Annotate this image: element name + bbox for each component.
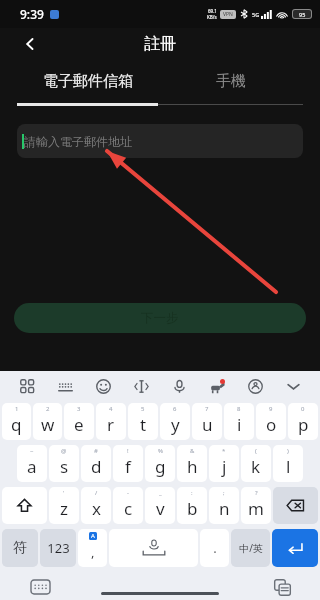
staticText: 5 — [141, 405, 145, 413]
button[interactable]: Profile — [242, 373, 268, 399]
staticText: 0 — [301, 405, 305, 413]
staticText: m — [248, 497, 264, 520]
staticText: l — [286, 455, 291, 478]
button[interactable]: ; — [209, 487, 239, 524]
staticText: e — [74, 413, 84, 436]
staticText: 123 — [47, 539, 70, 557]
staticText: a — [27, 455, 37, 478]
button[interactable]: Space — [109, 529, 198, 567]
staticText: r — [107, 413, 115, 436]
button[interactable]: Collapse keyboard — [280, 373, 306, 399]
staticText: k — [251, 455, 261, 478]
staticText: ) — [287, 447, 289, 455]
staticText: _ — [159, 489, 162, 497]
staticText: h — [187, 455, 198, 478]
button[interactable]: ' — [49, 487, 79, 524]
button[interactable]: 7 — [192, 403, 222, 440]
staticText: g — [155, 455, 166, 478]
staticText: - — [127, 489, 129, 497]
button[interactable]: 9 — [256, 403, 286, 440]
staticText: ? — [255, 489, 258, 497]
button[interactable]: : — [177, 487, 207, 524]
button[interactable]: ~ — [17, 445, 47, 482]
button[interactable]: 123 — [40, 529, 76, 567]
button[interactable]: ? — [241, 487, 271, 524]
staticText: v — [156, 497, 165, 520]
button[interactable]: 0 — [288, 403, 318, 440]
staticText: w — [41, 413, 55, 436]
button[interactable]: Switch keyboard — [28, 575, 52, 599]
staticText: 6 — [173, 405, 177, 413]
staticText: VPN — [223, 11, 233, 18]
staticText: . — [213, 539, 217, 557]
button[interactable]: Apps — [14, 373, 40, 399]
staticText: 請輸入電子郵件地址 — [24, 134, 132, 149]
staticText: ( — [255, 447, 257, 455]
button[interactable]: _ — [145, 487, 175, 524]
button[interactable]: 8 — [224, 403, 254, 440]
button[interactable]: Back — [14, 28, 46, 60]
button[interactable]: Home — [101, 592, 219, 595]
button[interactable]: Enter — [272, 529, 318, 567]
button[interactable]: 5 — [128, 403, 158, 440]
button[interactable]: 3 — [64, 403, 94, 440]
button[interactable]: Keyboard layout — [52, 373, 78, 399]
staticText: 8 — [237, 405, 241, 413]
button[interactable]: % — [145, 445, 175, 482]
staticText: x — [92, 497, 101, 520]
staticText: 7 — [205, 405, 209, 413]
button[interactable]: - — [113, 487, 143, 524]
button[interactable]: . — [200, 529, 229, 567]
staticText: , — [91, 543, 95, 561]
staticText: 2 — [46, 405, 50, 413]
button[interactable]: Text edit — [128, 373, 154, 399]
staticText: 9:39 — [20, 6, 44, 22]
staticText: p — [298, 413, 309, 436]
button[interactable]: 請輸入電子郵件地址 — [17, 124, 303, 158]
staticText: 9 — [269, 405, 273, 413]
staticText: 95 — [299, 11, 306, 18]
staticText: 69.1 — [208, 8, 217, 14]
button[interactable]: ! — [113, 445, 143, 482]
button[interactable]: # — [81, 445, 111, 482]
button[interactable]: 2 — [33, 403, 62, 440]
button[interactable]: ) — [273, 445, 303, 482]
button[interactable]: 中/英 — [231, 529, 270, 567]
staticText: j — [222, 455, 227, 478]
button[interactable]: 1 — [2, 403, 31, 440]
staticText: t — [140, 413, 147, 436]
button[interactable]: Voice input — [166, 373, 192, 399]
button[interactable]: 下一步 — [14, 303, 306, 333]
staticText: / — [95, 489, 98, 497]
button[interactable]: 電子郵件信箱 — [17, 68, 158, 94]
button[interactable]: 手機 — [158, 68, 303, 94]
button[interactable]: 6 — [160, 403, 190, 440]
button[interactable]: & — [177, 445, 207, 482]
staticText: 電子郵件信箱 — [43, 72, 133, 91]
staticText: 符 — [13, 539, 27, 557]
staticText: z — [60, 497, 68, 520]
button[interactable]: Backspace — [273, 487, 318, 524]
button[interactable]: 符 — [2, 529, 38, 567]
button[interactable]: A — [78, 529, 107, 567]
staticText: 中/英 — [239, 541, 263, 555]
staticText: 5G — [252, 11, 260, 18]
staticText: ~ — [30, 447, 34, 455]
staticText: 3 — [77, 405, 81, 413]
button[interactable]: ( — [241, 445, 271, 482]
button[interactable]: Sticker — [204, 373, 230, 399]
button[interactable]: Shift — [2, 487, 47, 524]
staticText: o — [266, 413, 277, 436]
staticText: q — [11, 413, 22, 436]
staticText: i — [237, 413, 242, 436]
staticText: c — [124, 497, 133, 520]
button[interactable]: 4 — [96, 403, 126, 440]
button[interactable]: Emoji — [90, 373, 116, 399]
staticText: u — [202, 413, 213, 436]
staticText: s — [60, 455, 69, 478]
button[interactable]: / — [81, 487, 111, 524]
button[interactable]: @ — [49, 445, 79, 482]
button[interactable]: * — [209, 445, 239, 482]
button[interactable]: Clipboard — [270, 575, 294, 599]
